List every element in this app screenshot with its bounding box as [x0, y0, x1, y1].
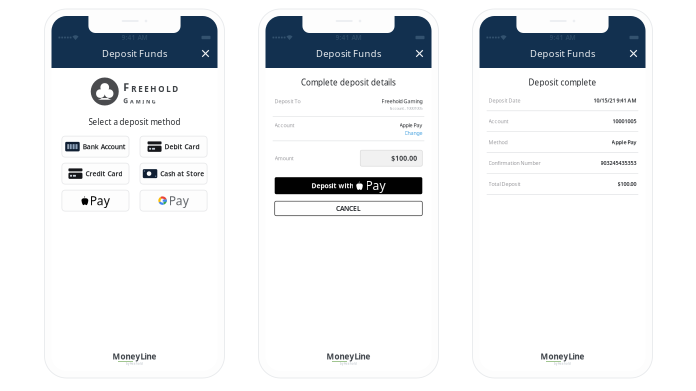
staticText: Account - 10001005: [389, 105, 422, 111]
staticText: $100.00: [617, 180, 636, 187]
staticText: 10/15/21 9:41 AM: [593, 97, 636, 104]
staticText: Deposit Funds: [102, 47, 167, 60]
staticText: 9:41 AM: [335, 33, 361, 42]
staticText: Amount: [275, 155, 294, 162]
staticText: Bank Account: [83, 142, 126, 151]
staticText: Total Deposit: [488, 180, 520, 187]
staticText: Debit Card: [165, 142, 200, 151]
staticText: L: [166, 83, 170, 94]
button[interactable]: Change: [404, 129, 422, 136]
staticText: Pay: [366, 177, 386, 193]
staticText: H: [150, 83, 156, 94]
staticText: Method: [488, 139, 507, 146]
staticText: by Freehold: [554, 362, 571, 365]
staticText: Confirmation Number: [488, 159, 540, 167]
staticText: by Freehold: [126, 362, 143, 365]
staticText: Select a deposit method: [88, 116, 180, 127]
button[interactable]: Close: [625, 45, 641, 61]
staticText: Pay: [90, 193, 110, 209]
button[interactable]: Close: [197, 45, 213, 61]
staticText: Deposit Date: [488, 97, 520, 104]
staticText: M: [136, 98, 141, 105]
staticText: O: [158, 83, 164, 94]
button[interactable]: Cash at Store: [140, 163, 207, 184]
button[interactable]: Close: [411, 45, 427, 61]
button[interactable]: Deposit with: [275, 177, 422, 194]
staticText: Apple Pay: [611, 139, 636, 146]
staticText: Deposit complete: [528, 77, 596, 88]
staticText: Credit Card: [85, 169, 122, 178]
staticText: $100.00: [391, 154, 417, 163]
button[interactable]: Debit Card: [140, 136, 207, 157]
staticText: by Freehold: [340, 362, 357, 365]
staticText: F: [123, 80, 129, 94]
staticText: Account: [274, 121, 294, 129]
staticText: Deposit Funds: [316, 47, 381, 60]
button[interactable]: Apple Pay: [62, 190, 129, 211]
staticText: 10001005: [612, 118, 636, 125]
staticText: D: [172, 83, 178, 94]
staticText: E: [138, 83, 142, 94]
staticText: N: [146, 98, 150, 105]
button[interactable]: CANCEL: [275, 201, 422, 216]
staticText: Deposit with: [311, 181, 353, 190]
staticText: CANCEL: [336, 204, 361, 213]
staticText: Deposit Funds: [530, 47, 595, 60]
staticText: Apple Pay: [399, 121, 422, 129]
staticText: Cash at Store: [160, 169, 204, 178]
staticText: G: [152, 98, 156, 105]
staticText: Pay: [169, 193, 189, 209]
staticText: Complete deposit details: [301, 77, 396, 88]
staticText: E: [144, 83, 148, 94]
staticText: 9:41 AM: [121, 33, 147, 42]
staticText: MoneyLine: [326, 351, 370, 362]
staticText: Account: [488, 118, 508, 125]
staticText: G: [123, 96, 128, 105]
staticText: I: [142, 98, 144, 105]
staticText: A: [130, 98, 134, 105]
staticText: 903245435353: [600, 159, 636, 167]
button[interactable]: Bank Account: [62, 136, 129, 157]
button[interactable]: Google Pay: [140, 190, 207, 211]
staticText: R: [131, 83, 136, 94]
staticText: 9:41 AM: [549, 33, 575, 42]
button[interactable]: Credit Card: [62, 163, 129, 184]
staticText: MoneyLine: [540, 351, 584, 362]
staticText: Change: [404, 129, 422, 136]
staticText: Deposit To: [274, 98, 300, 105]
staticText: MoneyLine: [112, 351, 156, 362]
staticText: Freehold Gaming: [381, 98, 422, 105]
